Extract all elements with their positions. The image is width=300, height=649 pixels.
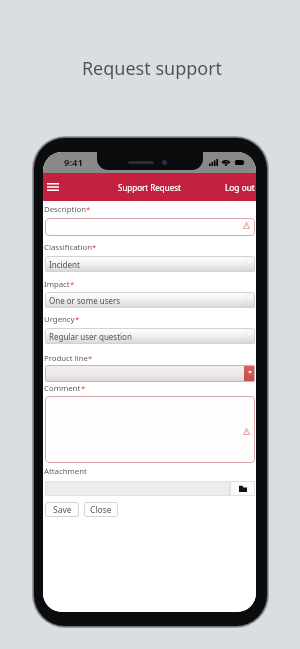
staticText: Classification [44, 242, 92, 253]
staticText: * [92, 242, 97, 253]
staticText: Urgency [44, 314, 75, 325]
button[interactable] [45, 396, 255, 463]
staticText: Save [53, 504, 72, 516]
staticText: Log out [225, 182, 255, 193]
staticText: Request support [2, 56, 300, 81]
button[interactable]: Log out [217, 176, 256, 199]
button[interactable]: Regular user question [45, 328, 255, 344]
button[interactable] [45, 218, 255, 236]
staticText: * [75, 314, 80, 325]
button[interactable]: One or some users [45, 292, 255, 308]
button[interactable]: Attachment path [45, 481, 230, 496]
staticText: * [81, 383, 86, 394]
staticText: Regular user question [49, 331, 132, 342]
staticText: Product line [44, 353, 88, 364]
staticText: Impact [44, 279, 70, 290]
button[interactable] [45, 365, 255, 382]
staticText: One or some users [49, 295, 121, 306]
button[interactable]: Save [45, 502, 79, 517]
staticText: * [86, 204, 91, 215]
staticText: Attachment [44, 466, 87, 477]
button[interactable]: Menu [43, 176, 63, 198]
staticText: Support Request [118, 182, 181, 193]
staticText: Close [90, 504, 112, 516]
button[interactable]: Close [84, 502, 118, 517]
staticText: Description [44, 204, 86, 215]
staticText: 9:41 [64, 156, 83, 169]
button[interactable]: Incident [45, 256, 255, 272]
button[interactable]: Browse files [230, 481, 255, 496]
staticText: * [88, 353, 93, 364]
staticText: Incident [49, 259, 80, 270]
staticText: Comment [44, 383, 81, 394]
staticText: * [70, 279, 75, 290]
